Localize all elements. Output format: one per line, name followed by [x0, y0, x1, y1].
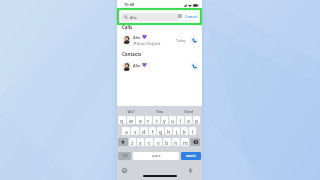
button[interactable]: a: [122, 127, 130, 135]
button[interactable]: f: [149, 127, 156, 135]
staticText: search: [186, 154, 196, 158]
button[interactable]: o: [185, 116, 192, 124]
other: Highlighted search field: [118, 9, 201, 24]
staticText: w: [129, 117, 134, 124]
button[interactable]: Call Alix: [190, 36, 198, 44]
button[interactable]: t: [153, 116, 160, 124]
button[interactable]: v: [154, 138, 162, 146]
staticText: x: [139, 139, 142, 146]
button[interactable]: Clear text: [178, 14, 182, 18]
button[interactable]: Alix: [121, 13, 179, 21]
staticText: Alix: [130, 15, 137, 20]
button[interactable]: p: [193, 116, 200, 124]
staticText: s: [134, 128, 137, 135]
button[interactable]: space: [133, 152, 179, 160]
staticText: Calls: [122, 24, 133, 30]
staticText: n: [174, 139, 178, 146]
button[interactable]: h: [165, 127, 172, 135]
button[interactable]: search: [181, 152, 201, 160]
staticText: j: [176, 128, 178, 135]
button[interactable]: Cancel: [185, 14, 198, 19]
button[interactable]: 123: [118, 152, 131, 160]
staticText: Cancel: [185, 14, 198, 19]
button[interactable]: Backspace: [190, 138, 200, 146]
staticText: 10:48: [124, 2, 135, 7]
button[interactable]: s: [131, 127, 139, 135]
button[interactable]: Emoji keyboard: [122, 168, 127, 173]
button[interactable]: Dictate: [188, 168, 193, 173]
staticText: r: [147, 117, 150, 124]
staticText: k: [183, 128, 186, 135]
button[interactable]: n: [172, 138, 180, 146]
staticText: f: [152, 128, 154, 135]
staticText: o: [187, 117, 191, 124]
staticText: m: [183, 139, 188, 146]
button[interactable]: Shift: [118, 138, 128, 146]
staticText: z: [131, 139, 134, 146]
button[interactable]: i: [177, 116, 184, 124]
button[interactable]: j: [173, 127, 180, 135]
staticText: Alix: [133, 63, 141, 68]
staticText: Broke England: [137, 41, 161, 46]
button[interactable]: Sliced: [174, 107, 202, 114]
staticText: v: [157, 139, 160, 146]
button[interactable]: y: [161, 116, 168, 124]
staticText: "Alix": [127, 109, 136, 113]
button[interactable]: u: [169, 116, 176, 124]
button[interactable]: w: [127, 116, 135, 124]
staticText: a: [125, 128, 128, 135]
staticText: e: [139, 117, 142, 124]
staticText: g: [159, 128, 163, 135]
button[interactable]: e: [136, 116, 144, 124]
staticText: Alix: [133, 35, 141, 40]
staticText: c: [148, 139, 151, 146]
staticText: y: [163, 117, 166, 124]
button[interactable]: Alix: [117, 34, 202, 46]
staticText: b: [165, 139, 169, 146]
staticText: q: [120, 117, 124, 124]
staticText: Contacts: [122, 51, 142, 57]
staticText: i: [180, 117, 182, 124]
button[interactable]: r: [145, 116, 152, 124]
button[interactable]: x: [137, 138, 144, 146]
button[interactable]: g: [157, 127, 164, 135]
staticText: space: [152, 154, 161, 158]
button[interactable]: l: [189, 127, 196, 135]
button[interactable]: Alix: [117, 61, 202, 72]
staticText: h: [167, 128, 171, 135]
staticText: l: [192, 128, 194, 135]
button[interactable]: m: [181, 138, 189, 146]
button[interactable]: "Alix": [117, 107, 146, 114]
button[interactable]: c: [145, 138, 153, 146]
staticText: Today: [176, 38, 186, 43]
staticText: p: [195, 117, 199, 124]
staticText: t: [156, 117, 158, 124]
button[interactable]: Slow: [146, 107, 174, 114]
button[interactable]: b: [163, 138, 171, 146]
staticText: d: [142, 128, 146, 135]
button[interactable]: q: [118, 116, 126, 124]
staticText: Sliced: [184, 109, 193, 113]
staticText: 123: [122, 154, 128, 158]
button[interactable]: k: [181, 127, 188, 135]
button[interactable]: d: [140, 127, 148, 135]
staticText: Slow: [156, 109, 164, 113]
staticText: u: [171, 117, 175, 124]
button[interactable]: Call Alix: [190, 62, 198, 70]
button[interactable]: z: [129, 138, 136, 146]
